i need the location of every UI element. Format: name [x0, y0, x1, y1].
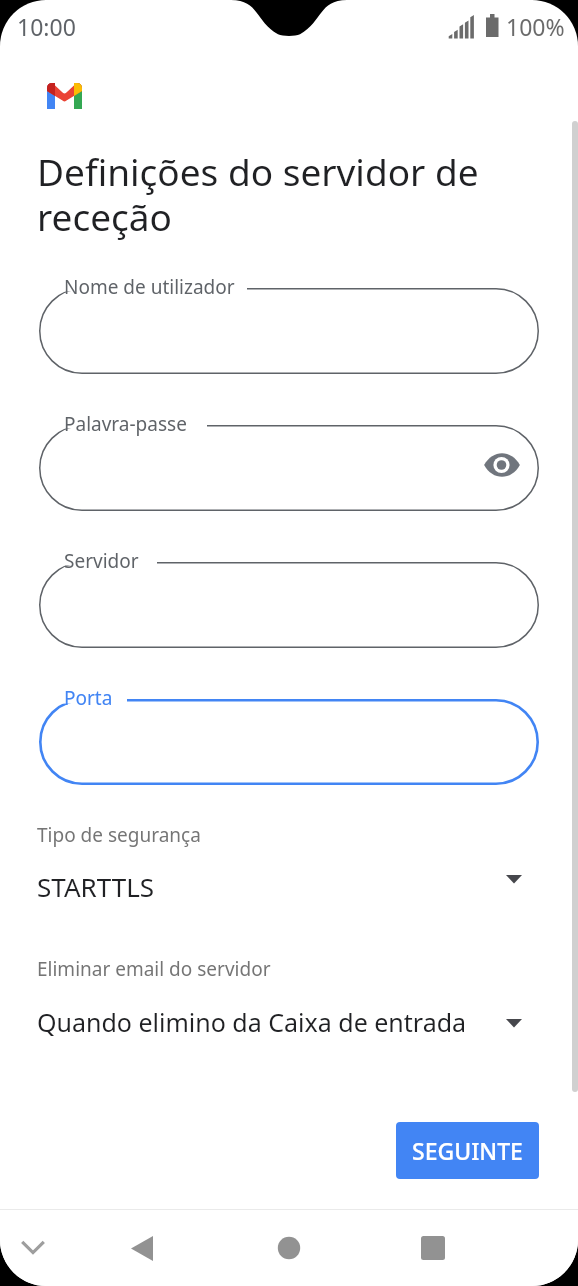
- button[interactable]: Nome de utilizador: [39, 288, 539, 374]
- button[interactable]: Servidor: [39, 562, 539, 648]
- button[interactable]: Palavra-passe: [39, 425, 539, 511]
- button[interactable]: Home: [266, 1225, 312, 1271]
- button[interactable]: Tipo de segurança: [0, 822, 578, 902]
- button[interactable]: SEGUINTE: [396, 1122, 539, 1179]
- staticText: Eliminar email do servidor: [37, 956, 271, 982]
- staticText: Porta: [64, 685, 113, 711]
- button[interactable]: Porta: [39, 699, 539, 785]
- staticText: Servidor: [64, 548, 139, 574]
- staticText: Nome de utilizador: [64, 274, 235, 300]
- button[interactable]: Mostrar palavra-passe: [482, 445, 522, 485]
- staticText: SEGUINTE: [412, 1135, 523, 1166]
- staticText: Tipo de segurança: [37, 822, 201, 848]
- staticText: Palavra-passe: [64, 411, 187, 437]
- button[interactable]: Back: [120, 1225, 166, 1271]
- staticText: STARTTLS: [37, 869, 155, 904]
- staticText: Quando elimino da Caixa de entrada: [37, 1005, 467, 1039]
- staticText: 100%: [506, 11, 565, 42]
- staticText: 10:00: [17, 11, 76, 42]
- staticText: Definições do servidor de receção: [37, 146, 507, 242]
- button[interactable]: Recents: [410, 1225, 456, 1271]
- button[interactable]: Eliminar email do servidor: [0, 956, 578, 1036]
- button[interactable]: Ocultar teclado: [10, 1225, 56, 1271]
